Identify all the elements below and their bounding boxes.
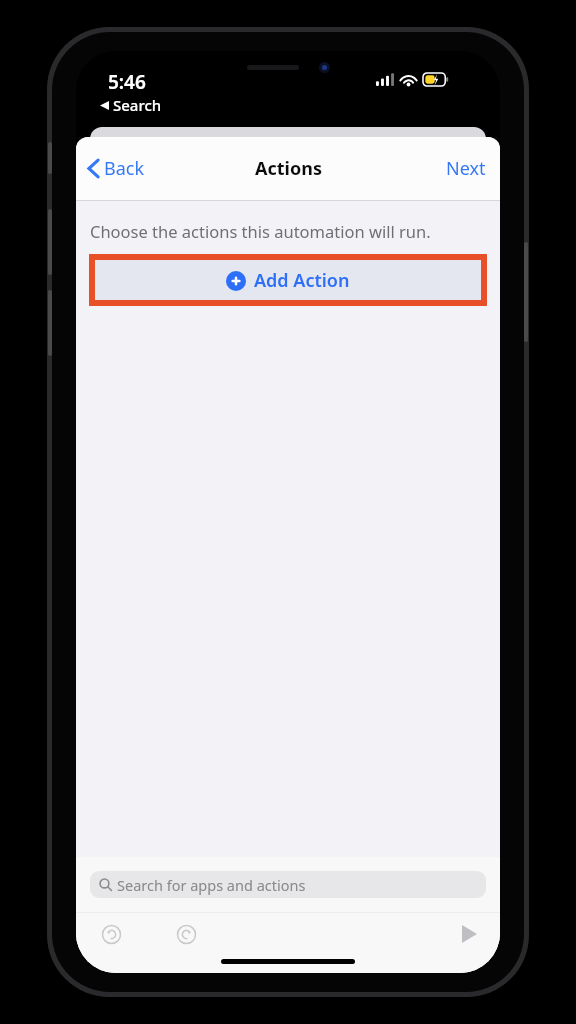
- staticText: Search: [113, 95, 162, 115]
- staticText: Search for apps and actions: [117, 875, 306, 895]
- button[interactable]: Undo: [94, 917, 128, 951]
- staticText: Next: [446, 156, 486, 181]
- button[interactable]: Back: [76, 148, 157, 189]
- staticText: Actions: [255, 156, 322, 181]
- button[interactable]: Redo: [169, 917, 203, 951]
- button[interactable]: Add Action: [95, 260, 481, 300]
- staticText: Choose the actions this automation will …: [90, 220, 431, 242]
- staticText: Add Action: [254, 268, 350, 293]
- button[interactable]: Search for apps and actions: [90, 871, 486, 898]
- staticText: 5:46: [108, 69, 146, 95]
- staticText: Back: [104, 156, 145, 181]
- button[interactable]: Next: [432, 146, 500, 191]
- button[interactable]: Run: [452, 917, 486, 951]
